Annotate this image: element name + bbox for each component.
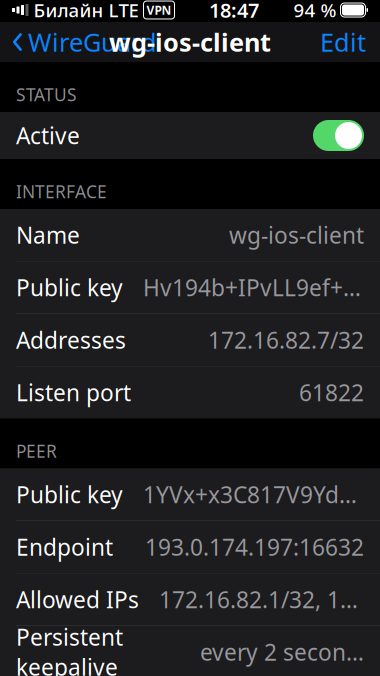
button[interactable]: Public key	[0, 468, 380, 521]
button[interactable]: WireGuard	[0, 22, 169, 62]
button[interactable]: Name	[0, 209, 380, 261]
button[interactable]: Persistent keepalive	[0, 626, 380, 676]
button[interactable]: Allowed IPs	[0, 573, 380, 626]
staticText: PEER	[16, 439, 57, 462]
button[interactable]: Listen port	[0, 366, 380, 418]
button[interactable]: Public key	[0, 261, 380, 314]
staticText: wg-ios-client	[109, 25, 271, 59]
staticText: INTERFACE	[16, 180, 107, 203]
staticText: Active	[16, 120, 80, 150]
staticText: Persistent keepalive	[16, 622, 123, 676]
staticText: Билайн	[33, 0, 103, 22]
staticText: 1YVx+x3C817V9YdhUtpUhzyDLVj	[143, 479, 364, 509]
staticText: Allowed IPs	[16, 584, 139, 614]
staticText: Listen port	[16, 377, 131, 407]
staticText: Name	[16, 220, 80, 250]
staticText: Addresses	[16, 325, 126, 355]
staticText: 18:47	[209, 0, 259, 23]
staticText: Public key	[16, 479, 123, 509]
staticText: Endpoint	[16, 532, 113, 562]
staticText: Public key	[16, 272, 123, 302]
staticText: Edit	[320, 25, 366, 59]
staticText: STATUS	[16, 83, 77, 106]
staticText: 172.16.82.7/32	[208, 325, 364, 355]
staticText: VPN	[146, 2, 171, 18]
staticText: WireGuard	[28, 25, 157, 59]
staticText: 193.0.174.197:16632	[145, 532, 364, 562]
staticText: 61822	[299, 377, 364, 407]
staticText: 94 %	[293, 0, 336, 22]
staticText: every 2 seconds	[200, 637, 364, 667]
button[interactable]: Endpoint	[0, 521, 380, 573]
button[interactable]: Active	[0, 112, 380, 159]
staticText: 172.16.82.1/32, 192.168.22.0/24	[159, 584, 364, 614]
button[interactable]: Edit	[306, 22, 380, 62]
button[interactable]: Addresses	[0, 314, 380, 366]
staticText: Hv194b+IPvLL9ef+CMVkURjHxri⟩	[143, 272, 364, 302]
staticText: LTE	[108, 0, 138, 22]
staticText: wg-ios-client	[229, 220, 364, 250]
